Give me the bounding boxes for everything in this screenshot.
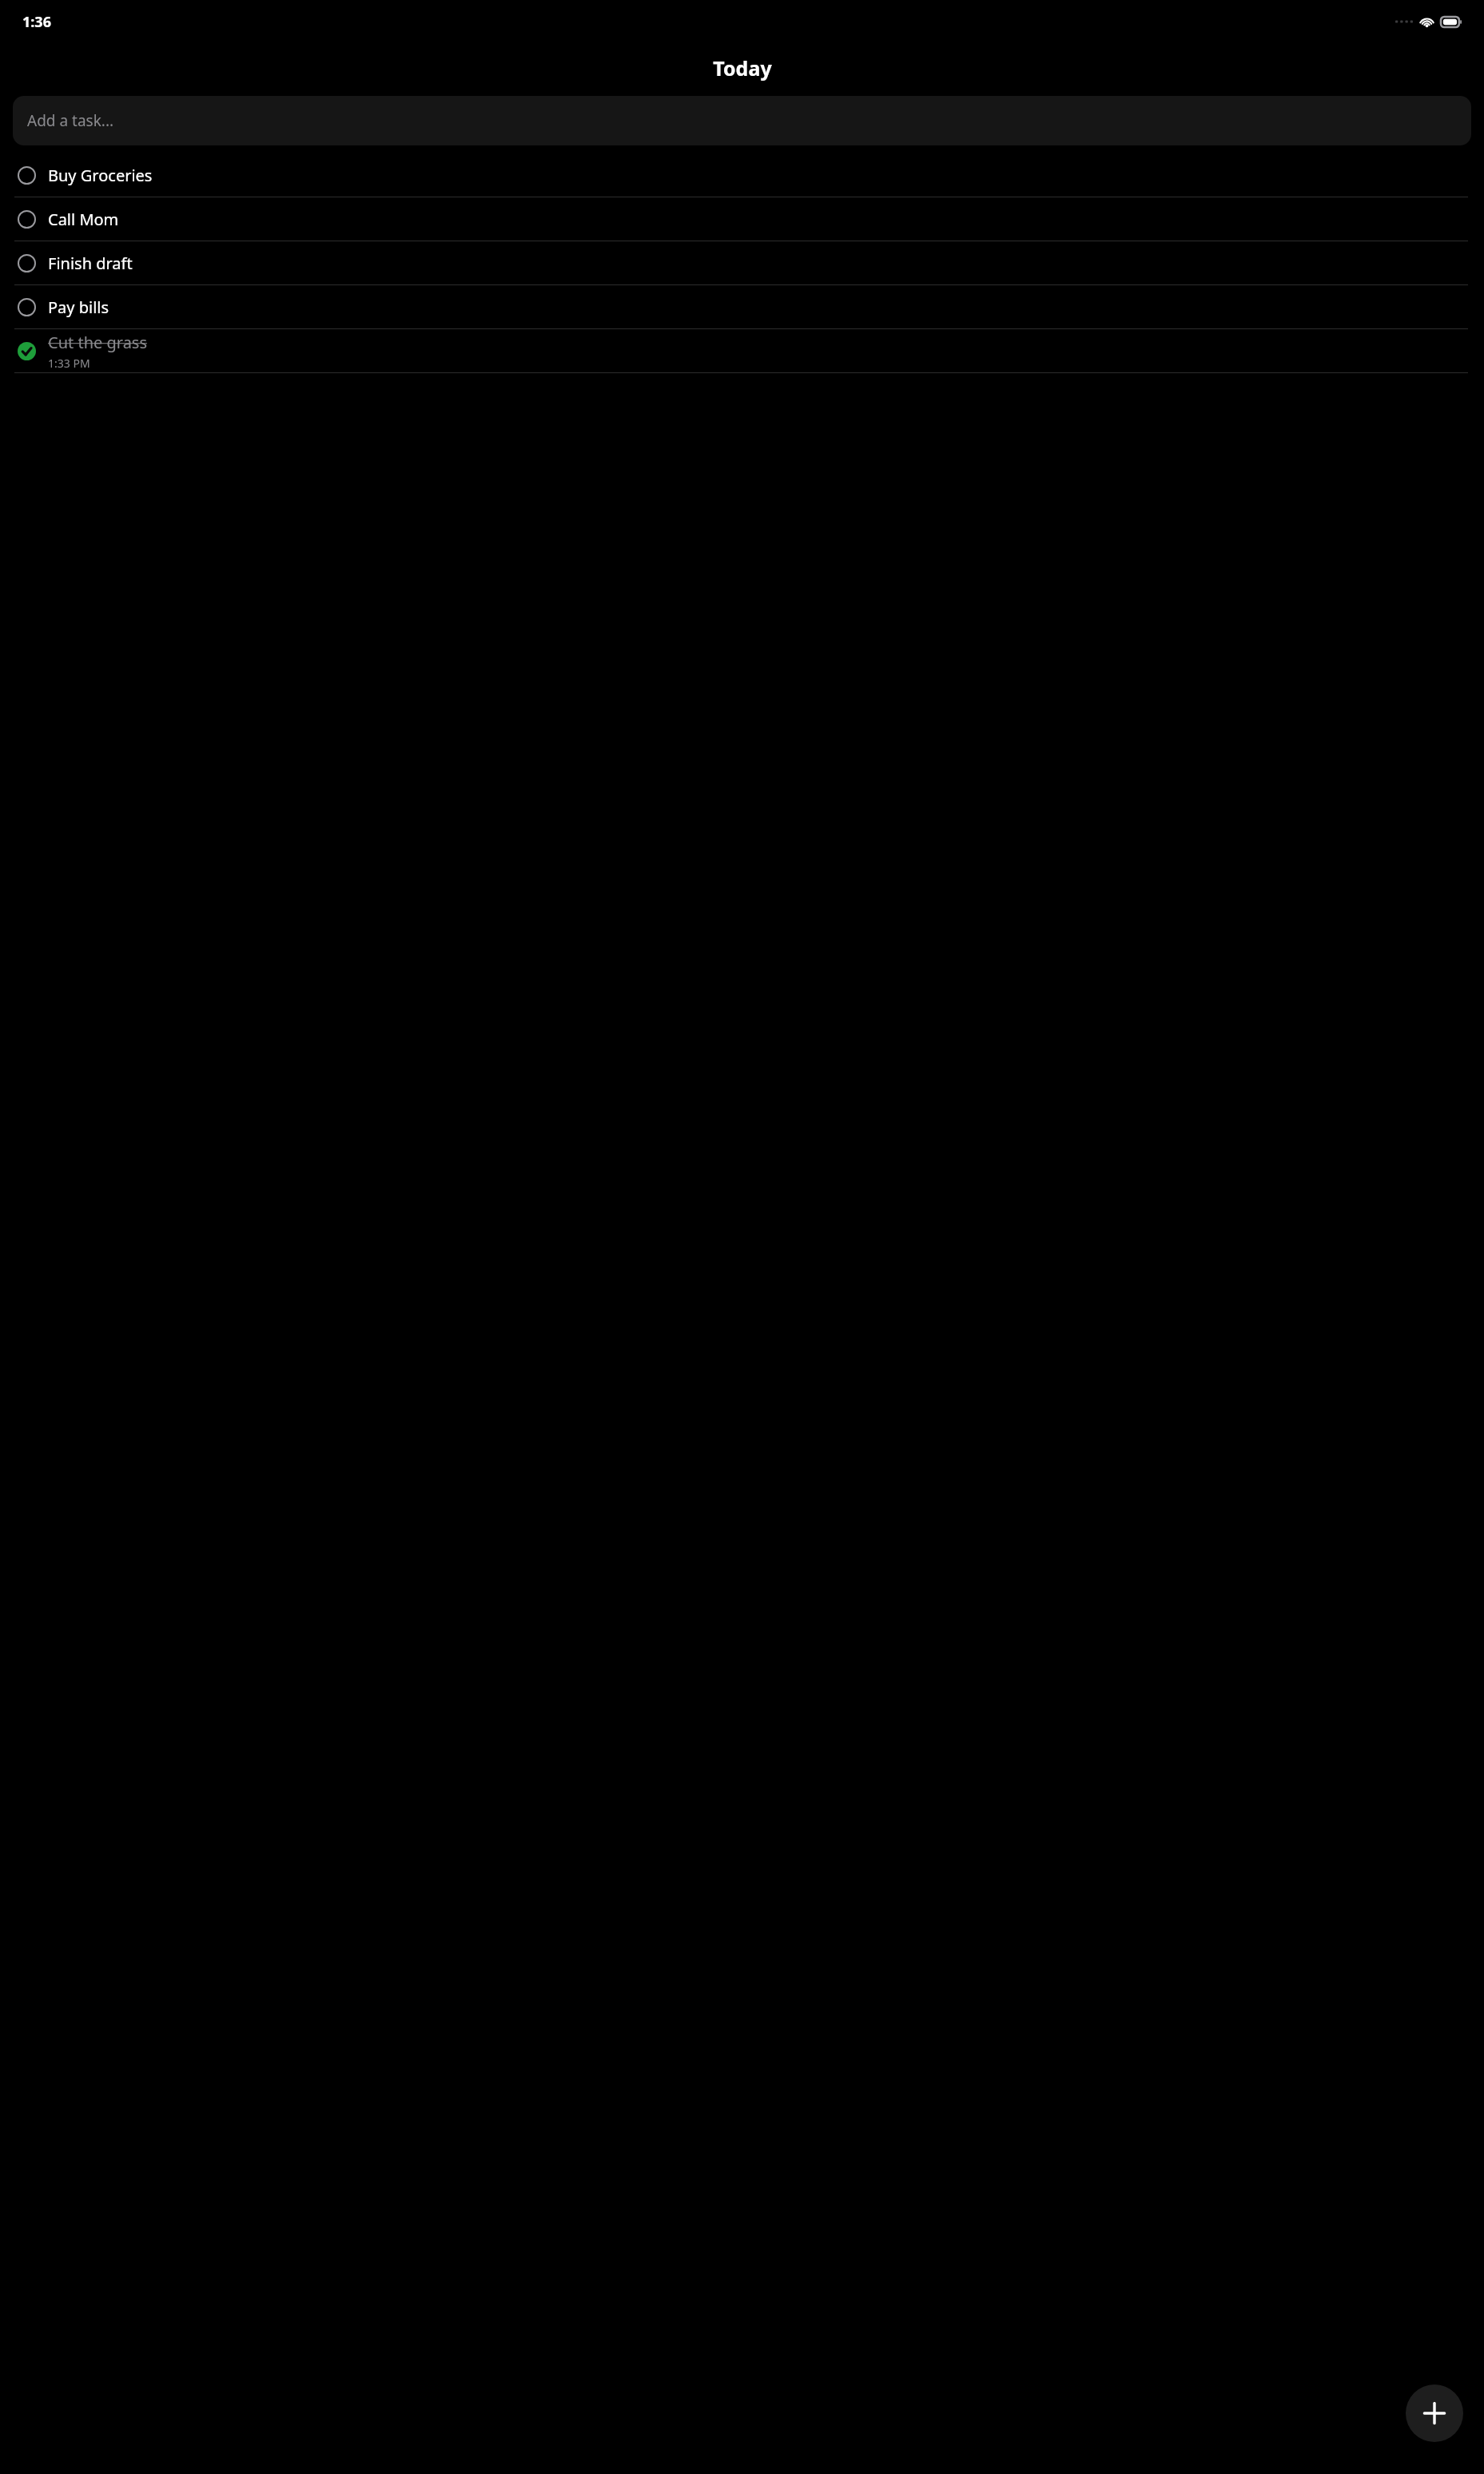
staticText: 1:36 [22,12,51,32]
button[interactable]: Cut the grass [0,329,1484,373]
button[interactable]: Buy Groceries [0,153,1484,197]
staticText: Add a task... [27,110,114,131]
button[interactable]: Finish draft [0,241,1484,285]
staticText: Call Mom [48,209,119,230]
staticText: Today [713,54,772,82]
button[interactable]: Call Mom [0,197,1484,241]
staticText: Pay bills [48,296,109,318]
staticText: Finish draft [48,253,133,274]
button[interactable]: Add task [1406,2385,1463,2442]
staticText: Buy Groceries [48,165,153,186]
button[interactable]: Pay bills [0,285,1484,329]
staticText: 1:33 PM [48,356,90,371]
staticText: Cut the grass [48,332,148,353]
button[interactable]: Add a task... [13,96,1471,145]
